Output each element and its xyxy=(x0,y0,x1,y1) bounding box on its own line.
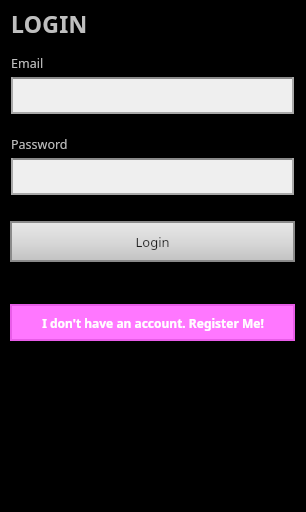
button[interactable] xyxy=(11,77,294,114)
button[interactable]: Login xyxy=(11,222,294,261)
staticText: I don't have an account. Register Me! xyxy=(42,315,264,331)
staticText: LOGIN xyxy=(11,8,88,39)
button[interactable]: I don't have an account. Register Me! xyxy=(11,305,294,340)
staticText: Login xyxy=(135,233,170,251)
button[interactable] xyxy=(11,158,294,195)
staticText: Password xyxy=(11,136,68,153)
staticText: Email xyxy=(11,55,44,72)
